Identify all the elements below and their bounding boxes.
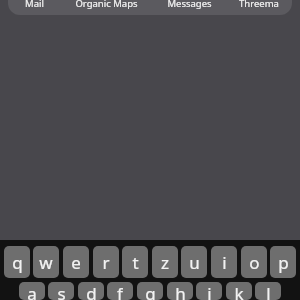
button[interactable]: u [181,246,207,278]
button[interactable]: Messages [159,0,219,15]
button[interactable]: r [93,246,119,278]
staticText: e [71,251,81,274]
staticText: p [278,251,289,274]
staticText: k [234,282,244,300]
button[interactable]: z [152,246,178,278]
staticText: z [161,251,169,274]
button[interactable]: Mail [14,0,54,15]
staticText: l [266,282,271,300]
staticText: t [132,251,139,274]
staticText: r [102,251,110,274]
button[interactable]: l [255,282,281,300]
button[interactable]: i [211,246,237,278]
button[interactable]: e [63,246,89,278]
button[interactable]: p [270,246,296,278]
staticText: f [117,282,123,300]
button[interactable]: q [4,246,30,278]
button[interactable]: Threema [231,0,286,15]
staticText: g [145,282,156,300]
staticText: d [86,282,97,300]
button[interactable]: j [196,282,222,300]
button[interactable]: a [19,282,45,300]
staticText: w [39,251,53,274]
staticText: s [57,282,66,300]
staticText: q [12,251,23,274]
staticText: o [249,251,260,274]
staticText: u [189,251,200,274]
staticText: Threema [239,0,279,10]
button[interactable]: w [33,246,59,278]
button[interactable]: Organic Maps [66,0,146,15]
button[interactable]: o [241,246,267,278]
staticText: j [207,282,212,300]
staticText: Mail [25,0,44,10]
staticText: h [175,282,186,300]
button[interactable]: k [226,282,252,300]
button[interactable]: f [107,282,133,300]
staticText: Organic Maps [75,0,138,10]
staticText: Messages [167,0,212,10]
button[interactable]: t [122,246,148,278]
button[interactable]: d [78,282,104,300]
button[interactable]: g [137,282,163,300]
staticText: a [27,282,37,300]
button[interactable]: h [167,282,193,300]
button[interactable]: s [48,282,74,300]
staticText: i [222,251,227,274]
